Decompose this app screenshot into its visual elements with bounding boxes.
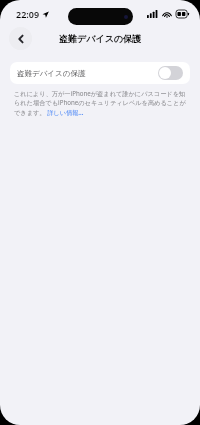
button[interactable]: 戻る [9, 27, 32, 50]
button[interactable]: 盗難デバイスの保護 [10, 62, 190, 84]
staticText: 盗難デバイスの保護 [17, 69, 158, 78]
staticText: これにより、万が一iPhoneが盗まれて誰かにパスコードを知られた場合でもiPh… [14, 89, 186, 117]
staticText: 22:09 [16, 8, 40, 20]
staticText: 盗難デバイスの保護 [59, 33, 142, 44]
button[interactable]: 盗難デバイスの保護 スイッチ [158, 66, 183, 80]
